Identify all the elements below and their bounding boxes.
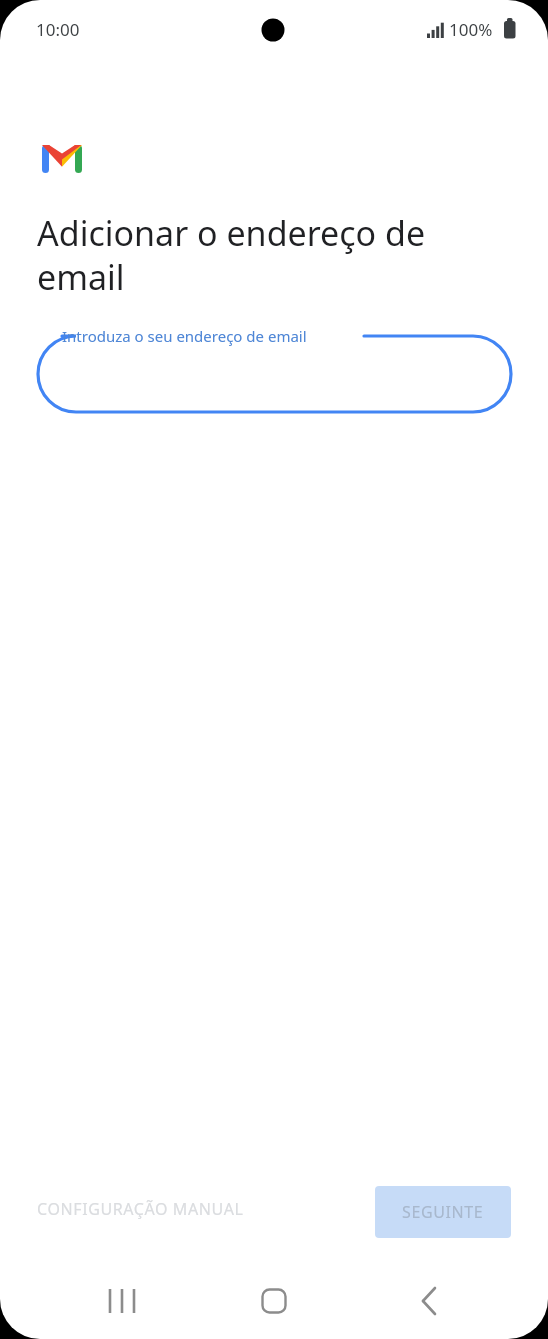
button[interactable]: Recents bbox=[92, 1271, 152, 1331]
button[interactable]: Back bbox=[397, 1271, 457, 1331]
staticText: Introduza o seu endereço de email bbox=[62, 326, 307, 346]
button[interactable]: Home bbox=[244, 1271, 304, 1331]
button[interactable]: SEGUINTE bbox=[375, 1186, 511, 1238]
staticText: SEGUINTE bbox=[402, 1201, 484, 1223]
staticText: CONFIGURAÇÃO MANUAL bbox=[37, 1198, 244, 1220]
staticText: 100% bbox=[449, 18, 493, 41]
button[interactable]: CONFIGURAÇÃO MANUAL bbox=[37, 1198, 244, 1220]
staticText: Adicionar o endereço de email bbox=[37, 210, 457, 300]
staticText: 10:00 bbox=[36, 18, 80, 41]
button[interactable]: Introduza o seu endereço de email bbox=[38, 336, 511, 412]
